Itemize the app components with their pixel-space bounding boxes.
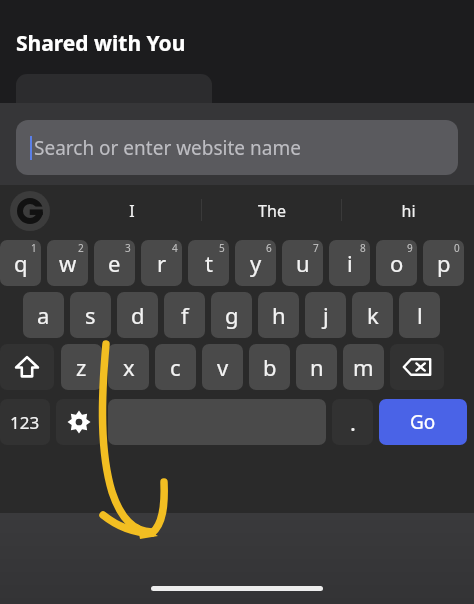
staticText: Shared with You <box>16 29 186 58</box>
staticText: u <box>296 248 310 278</box>
staticText: i <box>347 248 353 278</box>
staticText: 0 <box>454 241 460 255</box>
staticText: v <box>217 352 229 382</box>
button[interactable]: I <box>62 185 201 237</box>
button[interactable]: Shift <box>0 344 54 390</box>
button[interactable]: x <box>108 344 149 390</box>
button[interactable]: h <box>258 292 299 338</box>
staticText: t <box>205 248 213 278</box>
button[interactable]: m <box>343 344 384 390</box>
button[interactable]: Search or enter website name <box>16 120 458 175</box>
staticText: Search or enter website name <box>34 135 301 161</box>
button[interactable]: 123 <box>0 399 50 445</box>
staticText: a <box>37 300 50 330</box>
button[interactable]: p <box>423 240 464 286</box>
staticText: . <box>350 407 356 437</box>
button[interactable]: Backspace <box>390 344 444 390</box>
staticText: 3 <box>125 241 131 255</box>
staticText: w <box>59 248 77 278</box>
button[interactable]: z <box>61 344 102 390</box>
staticText: m <box>353 352 374 382</box>
staticText: 2 <box>78 241 84 255</box>
button[interactable]: Google <box>10 191 50 231</box>
staticText: hi <box>401 200 416 222</box>
staticText: k <box>367 300 379 330</box>
button[interactable]: r <box>141 240 182 286</box>
staticText: g <box>225 300 239 330</box>
staticText: n <box>310 352 324 382</box>
button[interactable]: n <box>296 344 337 390</box>
staticText: 1 <box>31 241 37 255</box>
button[interactable]: u <box>282 240 323 286</box>
staticText: j <box>323 300 329 330</box>
button[interactable]: b <box>249 344 290 390</box>
staticText: Go <box>410 409 436 435</box>
staticText: d <box>131 300 145 330</box>
staticText: f <box>181 300 189 330</box>
button[interactable]: k <box>352 292 393 338</box>
button[interactable]: l <box>399 292 440 338</box>
button[interactable]: f <box>164 292 205 338</box>
button[interactable]: g <box>211 292 252 338</box>
staticText: 123 <box>10 411 40 434</box>
staticText: c <box>170 352 181 382</box>
staticText: 7 <box>313 241 319 255</box>
staticText: b <box>263 352 277 382</box>
button[interactable]: e <box>94 240 135 286</box>
staticText: r <box>157 248 167 278</box>
staticText: 5 <box>219 241 225 255</box>
staticText: 9 <box>407 241 413 255</box>
staticText: s <box>85 300 96 330</box>
staticText: x <box>123 352 135 382</box>
staticText: 8 <box>360 241 366 255</box>
button[interactable]: The <box>202 185 341 237</box>
staticText: h <box>272 300 286 330</box>
button[interactable]: w <box>47 240 88 286</box>
staticText: The <box>258 200 286 222</box>
button[interactable]: i <box>329 240 370 286</box>
button[interactable]: o <box>376 240 417 286</box>
staticText: I <box>129 200 135 222</box>
button[interactable]: Settings <box>56 399 102 445</box>
staticText: 4 <box>172 241 178 255</box>
button[interactable]: y <box>235 240 276 286</box>
button[interactable]: q <box>0 240 41 286</box>
staticText: e <box>108 248 121 278</box>
button[interactable]: . <box>332 399 373 445</box>
staticText: p <box>437 248 451 278</box>
button[interactable]: Go <box>379 399 467 445</box>
button[interactable]: a <box>23 292 64 338</box>
button[interactable] <box>16 74 212 114</box>
staticText: z <box>76 352 87 382</box>
button[interactable]: s <box>70 292 111 338</box>
button[interactable]: d <box>117 292 158 338</box>
staticText: l <box>417 300 423 330</box>
button[interactable]: v <box>202 344 243 390</box>
button[interactable]: c <box>155 344 196 390</box>
staticText: q <box>14 248 28 278</box>
button[interactable]: hi <box>342 185 474 237</box>
button[interactable]: j <box>305 292 346 338</box>
staticText: o <box>390 248 404 278</box>
staticText: 6 <box>266 241 272 255</box>
button[interactable]: t <box>188 240 229 286</box>
staticText: y <box>250 248 262 278</box>
